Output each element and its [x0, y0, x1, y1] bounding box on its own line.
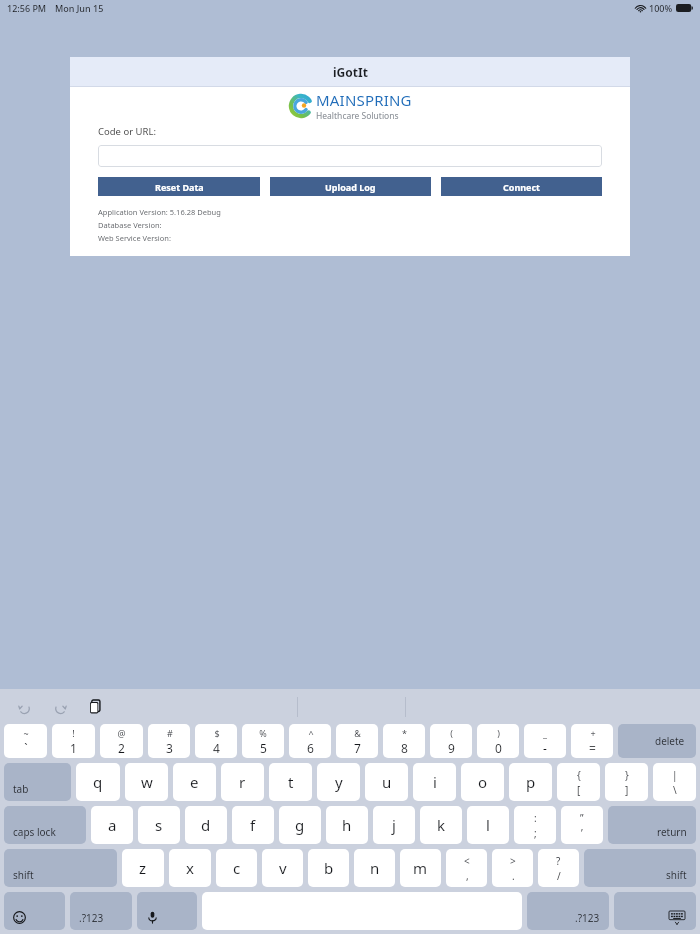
staticText: 2 [118, 740, 125, 756]
button[interactable]: r [221, 763, 264, 801]
button[interactable]: ? [538, 849, 579, 887]
button[interactable]: delete [618, 724, 696, 758]
button[interactable]: > [492, 849, 533, 887]
button[interactable]: _ [524, 724, 566, 758]
button[interactable]: Emoji [4, 892, 65, 930]
staticText: l [486, 815, 490, 835]
button[interactable]: return [608, 806, 696, 844]
button[interactable]: shift [584, 849, 696, 887]
button[interactable]: i [413, 763, 456, 801]
staticText: ~ [23, 727, 29, 739]
button[interactable]: a [91, 806, 133, 844]
button[interactable]: tab [4, 763, 71, 801]
staticText: 3 [166, 740, 173, 756]
staticText: i [433, 772, 437, 792]
staticText: ] [625, 783, 629, 797]
button[interactable]: % [242, 724, 284, 758]
button[interactable]: t [269, 763, 312, 801]
staticText: _ [543, 727, 547, 739]
staticText: [ [577, 783, 581, 797]
staticText: & [354, 727, 361, 739]
button[interactable]: Dictation [137, 892, 197, 930]
staticText: > [510, 854, 516, 868]
button[interactable]: p [509, 763, 552, 801]
button[interactable]: .?123 [70, 892, 132, 930]
button[interactable]: # [148, 724, 190, 758]
button[interactable]: d [185, 806, 227, 844]
button[interactable]: + [571, 724, 613, 758]
button[interactable]: g [279, 806, 321, 844]
button[interactable]: f [232, 806, 274, 844]
button[interactable]: y [317, 763, 360, 801]
button[interactable]: : [514, 806, 556, 844]
staticText: { [577, 768, 581, 782]
button[interactable]: caps lock [4, 806, 86, 844]
button[interactable]: } [605, 763, 648, 801]
staticText: h [342, 815, 352, 835]
button[interactable]: Undo [14, 697, 34, 717]
button[interactable]: j [373, 806, 415, 844]
staticText: @ [117, 727, 126, 739]
staticText: a [108, 815, 117, 835]
staticText: $ [214, 727, 220, 739]
button[interactable]: l [467, 806, 509, 844]
staticText: ; [534, 826, 537, 840]
button[interactable]: e [173, 763, 216, 801]
staticText: d [201, 815, 211, 835]
button[interactable]: ) [477, 724, 519, 758]
button[interactable]: shift [4, 849, 117, 887]
button[interactable]: | [653, 763, 696, 801]
button[interactable]: Paste [86, 697, 106, 717]
button[interactable] [98, 145, 602, 167]
button[interactable]: b [308, 849, 349, 887]
button[interactable]: Redo [50, 697, 70, 717]
button[interactable]: v [262, 849, 303, 887]
button[interactable]: $ [195, 724, 237, 758]
button[interactable]: h [326, 806, 368, 844]
staticText: 8 [401, 740, 408, 756]
button[interactable]: k [420, 806, 462, 844]
staticText: return [657, 825, 687, 839]
staticText: m [413, 858, 428, 878]
button[interactable]: ^ [289, 724, 331, 758]
staticText: % [259, 727, 267, 739]
button[interactable]: { [557, 763, 600, 801]
staticText: iGotIt [333, 64, 368, 80]
button[interactable]: Reset Data [98, 177, 260, 196]
button[interactable]: .?123 [527, 892, 609, 930]
button[interactable]: w [125, 763, 168, 801]
staticText: Healthcare Solutions [316, 110, 399, 122]
staticText: o [478, 772, 488, 792]
button[interactable]: & [336, 724, 378, 758]
button[interactable]: < [446, 849, 487, 887]
button[interactable]: n [354, 849, 395, 887]
button[interactable]: x [169, 849, 211, 887]
button[interactable]: * [383, 724, 425, 758]
button[interactable]: @ [100, 724, 143, 758]
button[interactable]: Upload Log [270, 177, 431, 196]
button[interactable]: s [138, 806, 180, 844]
button[interactable]: Hide keyboard [614, 892, 696, 930]
staticText: x [186, 858, 194, 878]
button[interactable]: o [461, 763, 504, 801]
button[interactable]: u [365, 763, 408, 801]
button[interactable]: z [122, 849, 164, 887]
staticText: 12:56 PM [7, 2, 47, 14]
staticText: \ [673, 783, 677, 797]
staticText: .?123 [79, 911, 104, 925]
button[interactable]: q [76, 763, 120, 801]
staticText: , [466, 869, 469, 883]
button[interactable]: ! [52, 724, 95, 758]
staticText: j [392, 815, 396, 835]
button[interactable]: m [400, 849, 441, 887]
button[interactable]: ” [561, 806, 603, 844]
staticText: | [672, 768, 678, 782]
button[interactable]: c [216, 849, 257, 887]
staticText: e [190, 772, 199, 792]
button[interactable]: ( [430, 724, 472, 758]
button[interactable]: Connect [441, 177, 602, 196]
staticText: c [233, 858, 241, 878]
button[interactable]: ~ [4, 724, 47, 758]
staticText: 0 [495, 740, 502, 756]
